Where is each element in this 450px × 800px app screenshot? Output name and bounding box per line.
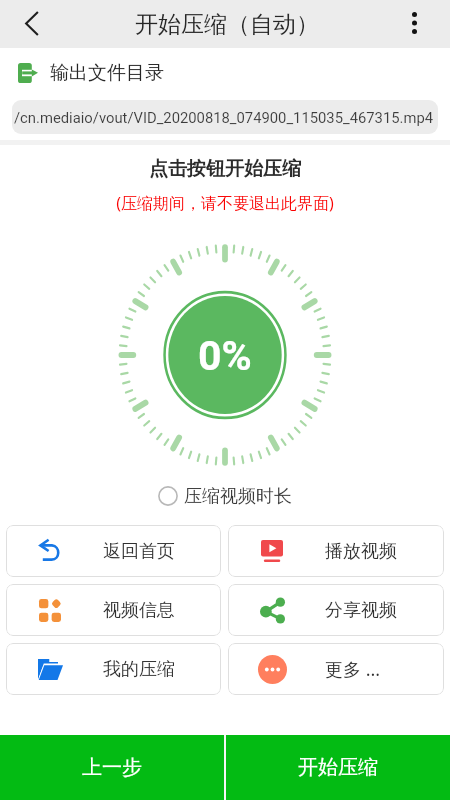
button[interactable]: 压缩视频时长 bbox=[0, 484, 450, 508]
staticText: 0% bbox=[198, 332, 252, 380]
staticText: 视频信息 bbox=[103, 599, 175, 622]
button[interactable]: 开始压缩 bbox=[226, 735, 450, 800]
staticText: 点击按钮开始压缩 bbox=[0, 157, 450, 181]
staticText: 开始压缩（自动） bbox=[135, 10, 319, 39]
staticText: 播放视频 bbox=[325, 540, 397, 563]
staticText: 分享视频 bbox=[325, 599, 397, 622]
button[interactable]: 分享视频 bbox=[228, 584, 444, 636]
staticText: 上一步 bbox=[82, 755, 142, 780]
button[interactable]: 视频信息 bbox=[6, 584, 221, 636]
staticText: (压缩期间，请不要退出此界面) bbox=[0, 192, 450, 214]
button[interactable]: Back bbox=[14, 5, 50, 41]
staticText: 我的压缩 bbox=[103, 658, 175, 681]
button[interactable]: Start compression bbox=[112, 242, 338, 468]
staticText: 输出文件目录 bbox=[50, 61, 164, 85]
button[interactable]: 返回首页 bbox=[6, 525, 221, 577]
button[interactable]: 上一步 bbox=[0, 735, 224, 800]
staticText: 压缩视频时长 bbox=[184, 485, 292, 508]
staticText: /cn.mediaio/vout/VID_20200818_074900_115… bbox=[14, 109, 434, 126]
staticText: 更多 ... bbox=[325, 657, 381, 682]
button[interactable]: 播放视频 bbox=[228, 525, 444, 577]
button[interactable]: More options bbox=[401, 10, 427, 36]
button[interactable]: 更多 ... bbox=[228, 643, 444, 695]
staticText: 返回首页 bbox=[103, 540, 175, 563]
staticText: 开始压缩 bbox=[298, 755, 378, 780]
button[interactable]: 我的压缩 bbox=[6, 643, 221, 695]
